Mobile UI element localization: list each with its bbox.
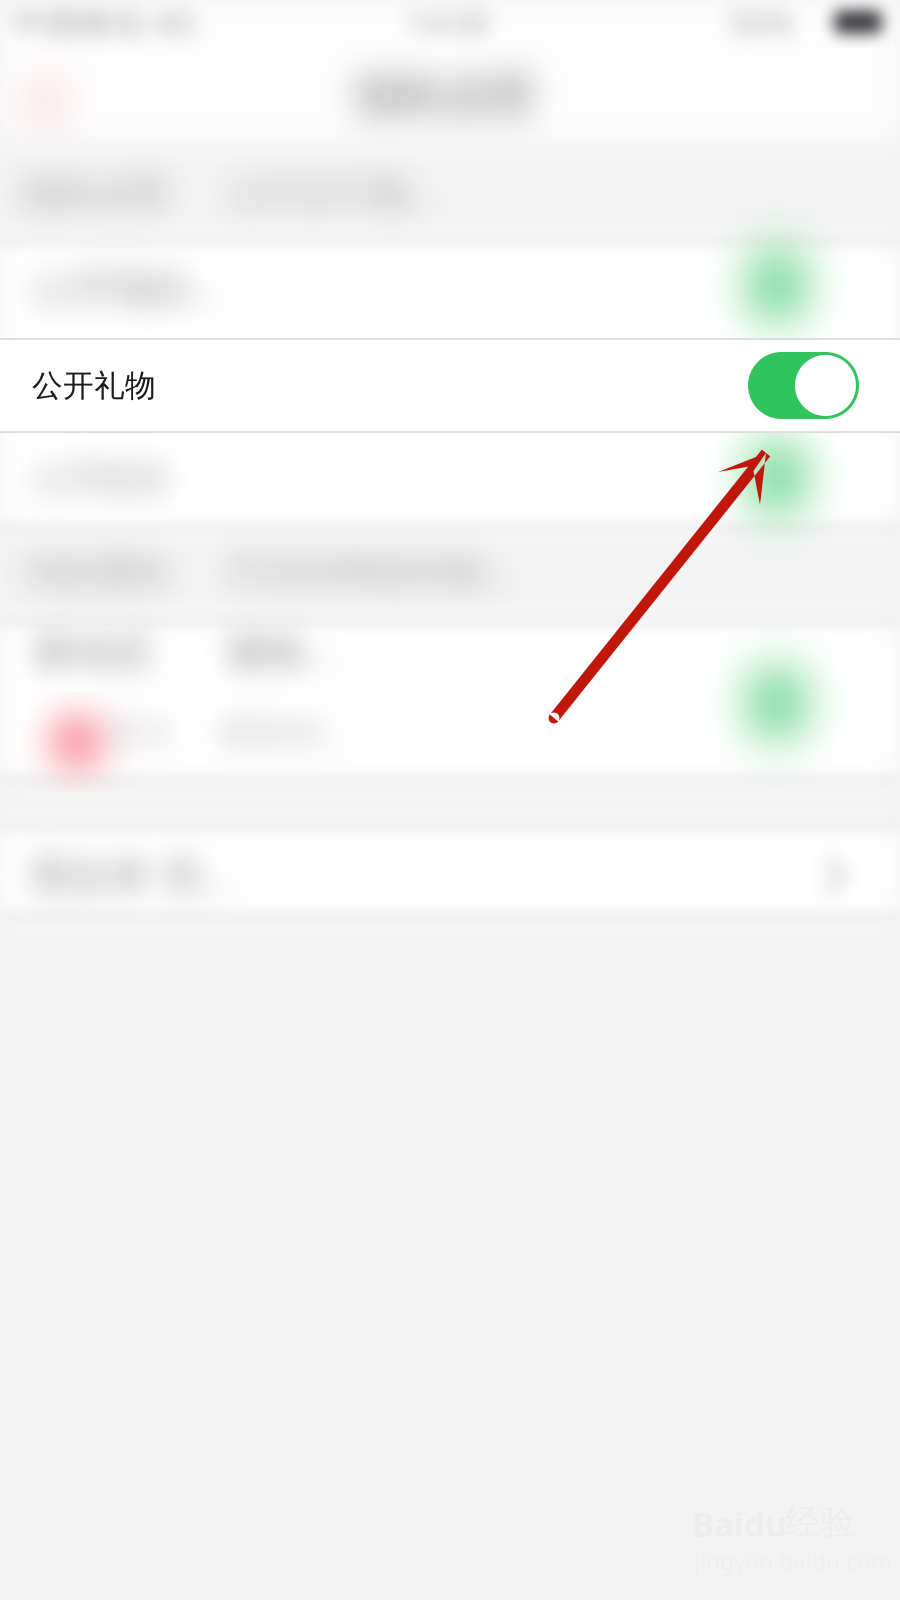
staticText: 公开礼物 <box>32 367 156 405</box>
button[interactable]: 公开礼物 <box>0 338 900 432</box>
button[interactable]: 返回 <box>0 48 120 148</box>
